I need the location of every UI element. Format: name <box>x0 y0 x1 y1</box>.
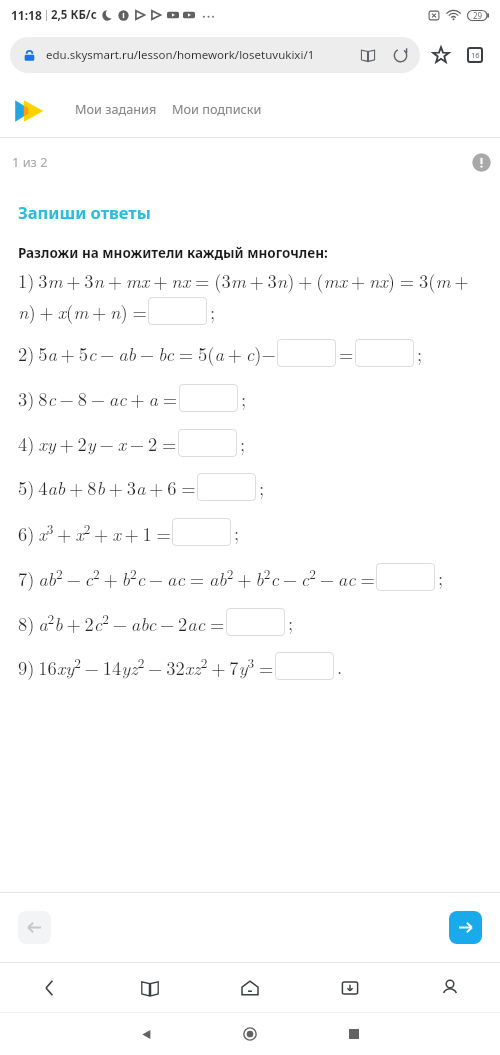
staticText: ; <box>210 298 216 324</box>
staticText: 5) 4ab + 8b + 3a + 6 = <box>18 474 196 500</box>
button[interactable]: Home <box>232 1016 268 1052</box>
staticText: ; <box>241 385 247 411</box>
button[interactable]: Answer field <box>178 429 237 457</box>
staticText: 2,5 КБ/с <box>51 7 97 23</box>
staticText: 6) x3 + x2 + x + 1 = <box>18 519 171 546</box>
staticText: ; <box>234 519 240 545</box>
staticText: 8) a2b + 2c2 − abc − 2ac = <box>18 609 225 636</box>
staticText: 4) xy + 2y − x − 2 = <box>18 430 177 456</box>
button[interactable]: Мои задания <box>75 100 157 117</box>
button[interactable]: Reader mode <box>356 43 380 67</box>
button[interactable]: Tabs <box>460 40 490 70</box>
button[interactable]: Answer field <box>197 473 256 501</box>
button[interactable]: Next <box>449 911 482 944</box>
staticText: 9) 16xy2 − 14yz2 − 32xz2 + 7y3 = <box>18 653 274 680</box>
button[interactable]: Answer field <box>179 384 238 412</box>
staticText: n) + x(m + n) = <box>18 298 147 324</box>
button[interactable]: Profile <box>400 963 500 1012</box>
button[interactable]: Мои подписки <box>172 100 262 117</box>
staticText: 16 <box>471 50 480 60</box>
button[interactable]: Answer field <box>275 652 334 680</box>
button[interactable]: Back <box>0 963 100 1012</box>
button[interactable]: Answer field <box>355 339 414 367</box>
staticText: = <box>339 340 354 366</box>
button[interactable]: Recents <box>336 1016 372 1052</box>
staticText: 7) ab2 − c2 + b2c − ac = ab2 + b2c − c2 … <box>18 564 375 591</box>
button[interactable]: Answer field <box>376 563 435 591</box>
button[interactable]: Bookmarks <box>100 963 200 1012</box>
button[interactable]: Back <box>128 1016 164 1052</box>
staticText: Запиши ответы <box>18 201 151 223</box>
staticText: ; <box>288 609 294 635</box>
staticText: ; <box>259 474 265 500</box>
button[interactable]: Answer field <box>148 297 207 325</box>
button[interactable]: Bookmark <box>426 40 456 70</box>
staticText: 29 <box>473 10 483 21</box>
staticText: edu.skysmart.ru/lesson/homework/losetuvu… <box>46 47 315 63</box>
button[interactable]: Answer field <box>226 608 285 636</box>
staticText: ; <box>438 564 444 590</box>
staticText: 1 из 2 <box>12 153 48 170</box>
staticText: . <box>337 653 343 679</box>
button[interactable]: Answer field <box>277 339 336 367</box>
staticText: 11:18 <box>11 7 42 23</box>
button[interactable]: Home <box>200 963 300 1012</box>
staticText: ; <box>417 340 423 366</box>
button[interactable]: Downloads <box>300 963 400 1012</box>
staticText: 2) 5a + 5c − ab − bc = 5(a + c)− <box>18 340 276 366</box>
staticText: 3) 8c − 8 − ac + a = <box>18 385 178 411</box>
staticText: Разложи на множители каждый многочлен: <box>18 244 328 262</box>
button[interactable]: Answer field <box>172 518 231 546</box>
staticText: ; <box>240 430 246 456</box>
staticText: 1) 3m + 3n + mx + nx = (3m + 3n) + (mx +… <box>18 267 469 293</box>
button[interactable]: Reload <box>388 43 412 67</box>
button[interactable]: Info <box>471 152 492 173</box>
button[interactable]: edu.skysmart.ru/lesson/homework/losetuvu… <box>10 37 420 73</box>
button[interactable]: Previous <box>18 911 51 944</box>
